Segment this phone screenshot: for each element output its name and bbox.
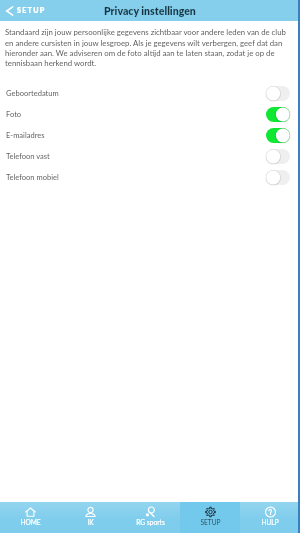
staticText: Standaard zijn jouw persoonlijke gegeven… [5,27,291,67]
staticText: HULP [261,518,279,526]
button[interactable]: Back [0,0,54,21]
staticText: Telefoon mobiel [6,173,266,182]
button[interactable]: Uit [266,86,290,101]
staticText: Geboortedatum [6,89,266,98]
button[interactable]: Foto [0,104,300,125]
button[interactable]: SETUP [180,502,240,533]
button[interactable]: Telefoon mobiel [0,167,300,188]
button[interactable]: IK [60,502,120,533]
button[interactable]: Telefoon vast [0,146,300,167]
staticText: Telefoon vast [6,152,266,161]
button[interactable]: Uit [266,149,290,164]
button[interactable]: Geboortedatum [0,83,300,104]
button[interactable]: Uit [266,170,290,185]
staticText: E-mailadres [6,131,266,140]
staticText: SETUP [17,6,46,15]
button[interactable]: E-mailadres [0,125,300,146]
staticText: Foto [6,110,266,119]
button[interactable]: HOME [0,502,60,533]
staticText: SETUP [200,518,221,526]
staticText: HOME [20,518,41,526]
button[interactable]: HULP [240,502,300,533]
button[interactable]: Aan [266,128,290,143]
staticText: IK [87,518,94,526]
button[interactable]: RG sports [120,502,180,533]
staticText: RG sports [136,518,165,526]
staticText: Privacy instellingen [104,5,196,18]
other: Back [6,6,13,16]
button[interactable]: Aan [266,107,290,122]
